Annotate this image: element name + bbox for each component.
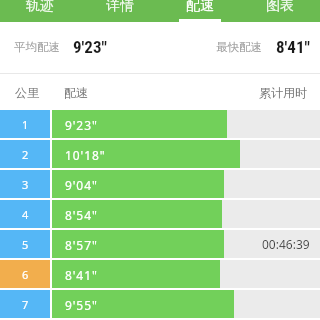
button[interactable]: 1	[0, 110, 320, 138]
button[interactable]: 6	[0, 260, 320, 288]
staticText: 8'57"	[65, 237, 98, 253]
staticText: 详情	[106, 0, 134, 15]
button[interactable]: 7	[0, 290, 320, 318]
button[interactable]: 2	[0, 140, 320, 168]
staticText: 9'23"	[65, 117, 98, 133]
staticText: 图表	[266, 0, 294, 15]
button[interactable]: 详情	[80, 0, 160, 22]
staticText: 配速	[64, 85, 88, 100]
staticText: 累计用时	[259, 85, 307, 100]
staticText: 配速	[186, 0, 214, 15]
staticText: 3	[22, 177, 29, 192]
staticText: 8'41"	[65, 267, 98, 283]
staticText: 2	[22, 147, 29, 162]
staticText: 8'41"	[276, 37, 310, 57]
staticText: 9'23"	[73, 37, 107, 57]
staticText: 9'55"	[65, 297, 98, 313]
staticText: 最快配速	[216, 40, 262, 54]
staticText: 10'18"	[65, 147, 106, 163]
staticText: 4	[22, 207, 29, 222]
staticText: 1	[22, 117, 29, 132]
button[interactable]: 图表	[240, 0, 320, 22]
staticText: 5	[22, 237, 29, 252]
button[interactable]: 轨迹	[0, 0, 80, 22]
staticText: 公里	[15, 85, 39, 100]
staticText: 8'54"	[65, 207, 98, 223]
button[interactable]: 配速	[160, 0, 240, 22]
button[interactable]: 3	[0, 170, 320, 198]
button[interactable]: 5	[0, 230, 320, 258]
staticText: 轨迹	[26, 0, 54, 15]
staticText: 6	[22, 267, 29, 282]
staticText: 00:46:39	[262, 236, 310, 252]
staticText: 7	[22, 297, 29, 312]
staticText: 平均配速	[14, 40, 60, 54]
button[interactable]: 4	[0, 200, 320, 228]
staticText: 9'04"	[65, 177, 98, 193]
